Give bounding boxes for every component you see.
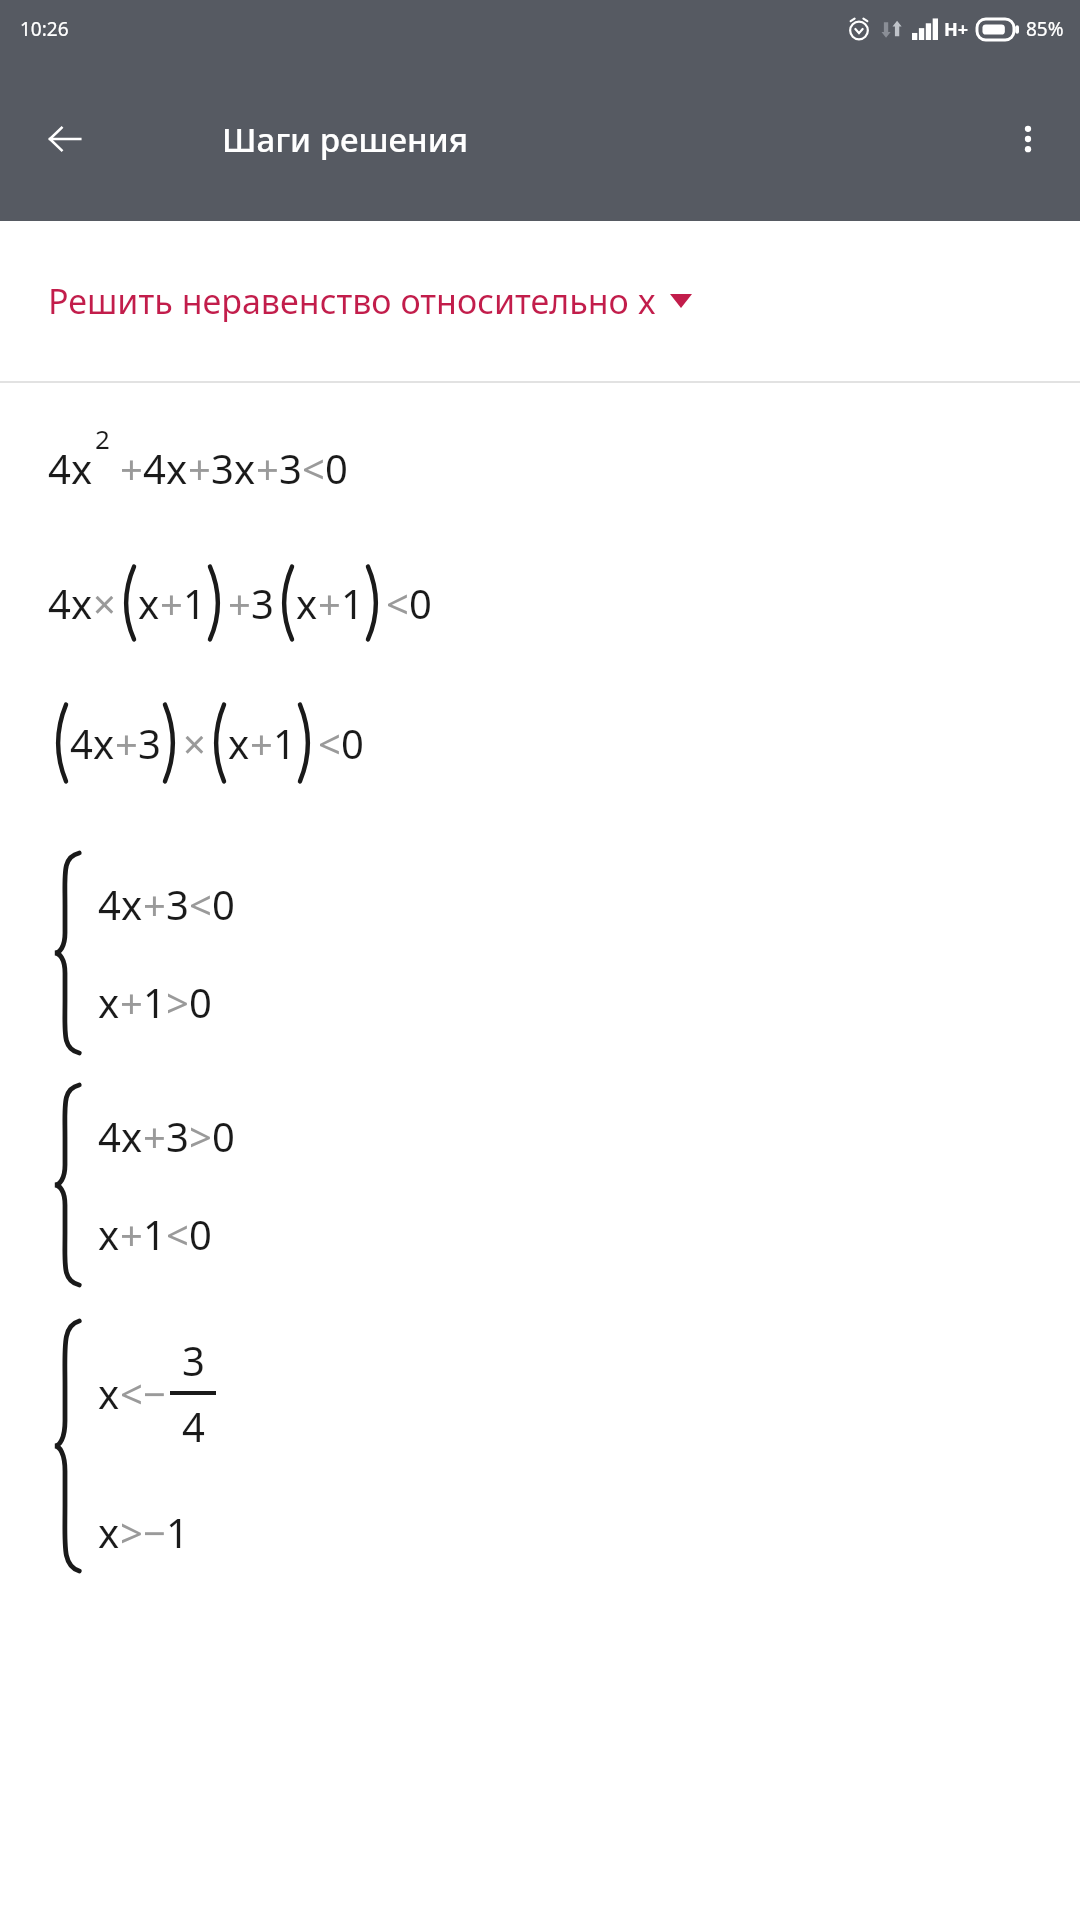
staticText: x [138,576,160,630]
button[interactable]: Решить неравенство относительно x [0,221,1080,381]
staticText: < [318,716,341,770]
staticText: x [98,1366,120,1420]
button[interactable]: Back [34,108,96,170]
staticText: + [250,716,273,770]
staticText: 4x [98,1109,143,1163]
staticText: 0 [341,716,364,770]
staticText: − [143,1366,166,1420]
staticText: 0 [189,1207,212,1261]
staticText: 4x [70,716,115,770]
staticText: − [143,1505,166,1559]
staticText: x [98,975,120,1029]
staticText: 10:26 [20,16,69,42]
staticText: 3 [166,877,189,931]
staticText: H+ [944,17,969,42]
staticText: 1 [273,716,296,770]
staticText: + [143,877,166,931]
staticText: 1 [143,1207,166,1261]
staticText: + [120,1207,143,1261]
staticText: + [115,716,138,770]
staticText: 3 [182,1333,205,1387]
staticText: + [188,441,211,495]
staticText: 4x [48,441,93,495]
staticText: 1 [341,576,364,630]
staticText: 1 [166,1505,189,1559]
staticText: x [98,1505,120,1559]
staticText: 3 [279,441,302,495]
staticText: × [183,716,206,770]
staticText: 1 [183,576,206,630]
staticText: 4 [182,1399,205,1453]
staticText: + [318,576,341,630]
staticText: 85% [1026,16,1064,42]
staticText: + [256,441,279,495]
staticText: 3 [138,716,161,770]
staticText: 4x [48,576,93,630]
staticText: > [166,975,189,1029]
staticText: + [120,441,143,495]
staticText: 0 [212,1109,235,1163]
staticText: x [296,576,318,630]
button[interactable]: More options [996,107,1060,171]
staticText: Решить неравенство относительно x [48,278,656,324]
staticText: < [166,1207,189,1261]
staticText: > [189,1109,212,1163]
staticText: 0 [212,877,235,931]
staticText: + [228,576,251,630]
staticText: x [98,1207,120,1261]
staticText: 4x [98,877,143,931]
staticText: 0 [409,576,432,630]
staticText: 3 [251,576,274,630]
staticText: + [120,975,143,1029]
staticText: × [93,576,116,630]
staticText: 0 [189,975,212,1029]
staticText: 3x [211,441,256,495]
staticText: > [120,1505,143,1559]
staticText: < [189,877,212,931]
staticText: + [143,1109,166,1163]
staticText: x [228,716,250,770]
staticText: 2 [95,421,110,456]
staticText: < [120,1366,143,1420]
staticText: 4x [143,441,188,495]
staticText: + [160,576,183,630]
staticText: Шаги решения [222,117,469,162]
staticText: 0 [325,441,348,495]
staticText: 3 [166,1109,189,1163]
staticText: < [302,441,325,495]
staticText: < [386,576,409,630]
staticText: 1 [143,975,166,1029]
